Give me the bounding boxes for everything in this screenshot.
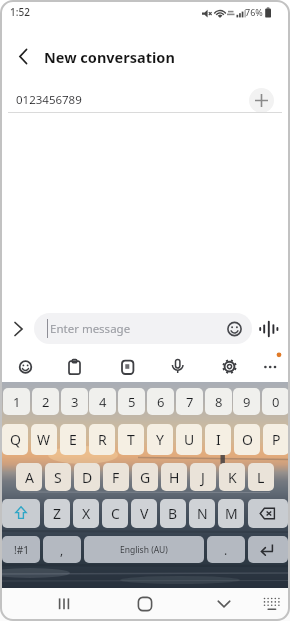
button[interactable]: H xyxy=(161,463,187,491)
staticText: New conversation xyxy=(44,47,175,67)
staticText: 0123456789 xyxy=(16,92,82,108)
button[interactable]: R xyxy=(89,424,115,455)
button[interactable]: 2 xyxy=(32,388,59,415)
button[interactable] xyxy=(164,353,191,380)
button[interactable]: !#1 xyxy=(2,536,40,563)
staticText: F xyxy=(112,468,120,487)
button[interactable] xyxy=(8,318,30,340)
staticText: 5 xyxy=(128,393,136,411)
button[interactable] xyxy=(12,353,39,380)
staticText: !#1 xyxy=(14,543,29,557)
staticText: K xyxy=(228,468,237,487)
staticText: L xyxy=(257,468,265,487)
button[interactable]: E xyxy=(60,424,86,455)
button[interactable] xyxy=(257,318,281,340)
staticText: H xyxy=(169,468,180,487)
staticText: 0 xyxy=(272,393,280,411)
button[interactable]: B xyxy=(160,499,186,528)
button[interactable] xyxy=(34,313,252,344)
button[interactable] xyxy=(50,590,78,618)
button[interactable] xyxy=(210,590,238,618)
staticText: T xyxy=(127,430,135,449)
button[interactable]: G xyxy=(132,463,158,491)
button[interactable]: W xyxy=(31,424,57,455)
button[interactable] xyxy=(8,42,38,72)
button[interactable]: T xyxy=(118,424,144,455)
button[interactable]: 9 xyxy=(233,388,260,415)
staticText: , xyxy=(60,542,64,558)
button[interactable]: O xyxy=(234,424,260,455)
button[interactable] xyxy=(257,353,284,380)
staticText: W xyxy=(37,430,51,449)
staticText: C xyxy=(111,504,120,523)
button[interactable] xyxy=(216,353,243,380)
staticText: 3 xyxy=(71,393,79,411)
staticText: 1:52 xyxy=(10,5,30,19)
button[interactable]: Y xyxy=(147,424,173,455)
button[interactable]: English (AU) xyxy=(84,536,204,563)
button[interactable]: F xyxy=(103,463,129,491)
button[interactable]: D xyxy=(74,463,100,491)
button[interactable] xyxy=(131,590,159,618)
button[interactable] xyxy=(114,353,141,380)
button[interactable]: P xyxy=(263,424,289,455)
button[interactable] xyxy=(248,499,288,528)
button[interactable]: A xyxy=(16,463,42,491)
button[interactable]: C xyxy=(102,499,128,528)
button[interactable]: V xyxy=(131,499,157,528)
staticText: Enter message xyxy=(50,321,131,337)
button[interactable]: . xyxy=(207,536,245,563)
button[interactable]: 7 xyxy=(176,388,203,415)
button[interactable]: S xyxy=(45,463,71,491)
button[interactable]: 3 xyxy=(61,388,88,415)
staticText: English (AU) xyxy=(120,544,168,556)
button[interactable]: L xyxy=(248,463,274,491)
staticText: 6 xyxy=(157,393,165,411)
staticText: 7 xyxy=(186,393,194,411)
button[interactable] xyxy=(259,592,285,616)
staticText: O xyxy=(242,430,253,449)
staticText: G xyxy=(140,468,151,487)
staticText: U xyxy=(184,430,195,449)
staticText: P xyxy=(272,430,281,449)
button[interactable] xyxy=(249,88,274,113)
staticText: Z xyxy=(53,504,62,523)
button[interactable]: 5 xyxy=(118,388,145,415)
staticText: 1 xyxy=(13,393,21,411)
button[interactable]: Z xyxy=(44,499,70,528)
button[interactable]: 6 xyxy=(147,388,174,415)
button[interactable]: 4 xyxy=(89,388,116,415)
staticText: Q xyxy=(10,430,21,449)
button[interactable] xyxy=(61,353,88,380)
staticText: 8 xyxy=(215,393,223,411)
button[interactable]: J xyxy=(190,463,216,491)
button[interactable]: M xyxy=(218,499,244,528)
staticText: 2 xyxy=(42,393,50,411)
button[interactable] xyxy=(224,318,246,340)
staticText: I xyxy=(216,430,221,449)
staticText: D xyxy=(82,468,93,487)
button[interactable]: X xyxy=(73,499,99,528)
staticText: . xyxy=(224,542,228,558)
staticText: R xyxy=(98,430,107,449)
staticText: E xyxy=(69,430,77,449)
staticText: 4 xyxy=(99,393,107,411)
staticText: 9 xyxy=(243,393,251,411)
staticText: 76% xyxy=(245,6,263,18)
button[interactable]: , xyxy=(43,536,81,563)
staticText: N xyxy=(197,504,208,523)
staticText: S xyxy=(54,468,62,487)
button[interactable]: 1 xyxy=(3,388,30,415)
button[interactable]: 0 xyxy=(262,388,289,415)
button[interactable]: K xyxy=(219,463,245,491)
button[interactable] xyxy=(2,499,40,528)
staticText: J xyxy=(201,468,205,487)
staticText: V xyxy=(140,504,149,523)
button[interactable] xyxy=(248,536,288,563)
button[interactable]: U xyxy=(176,424,202,455)
button[interactable]: N xyxy=(189,499,215,528)
button[interactable]: I xyxy=(205,424,231,455)
button[interactable]: Q xyxy=(2,424,28,455)
button[interactable]: 8 xyxy=(205,388,232,415)
staticText: X xyxy=(82,504,91,523)
